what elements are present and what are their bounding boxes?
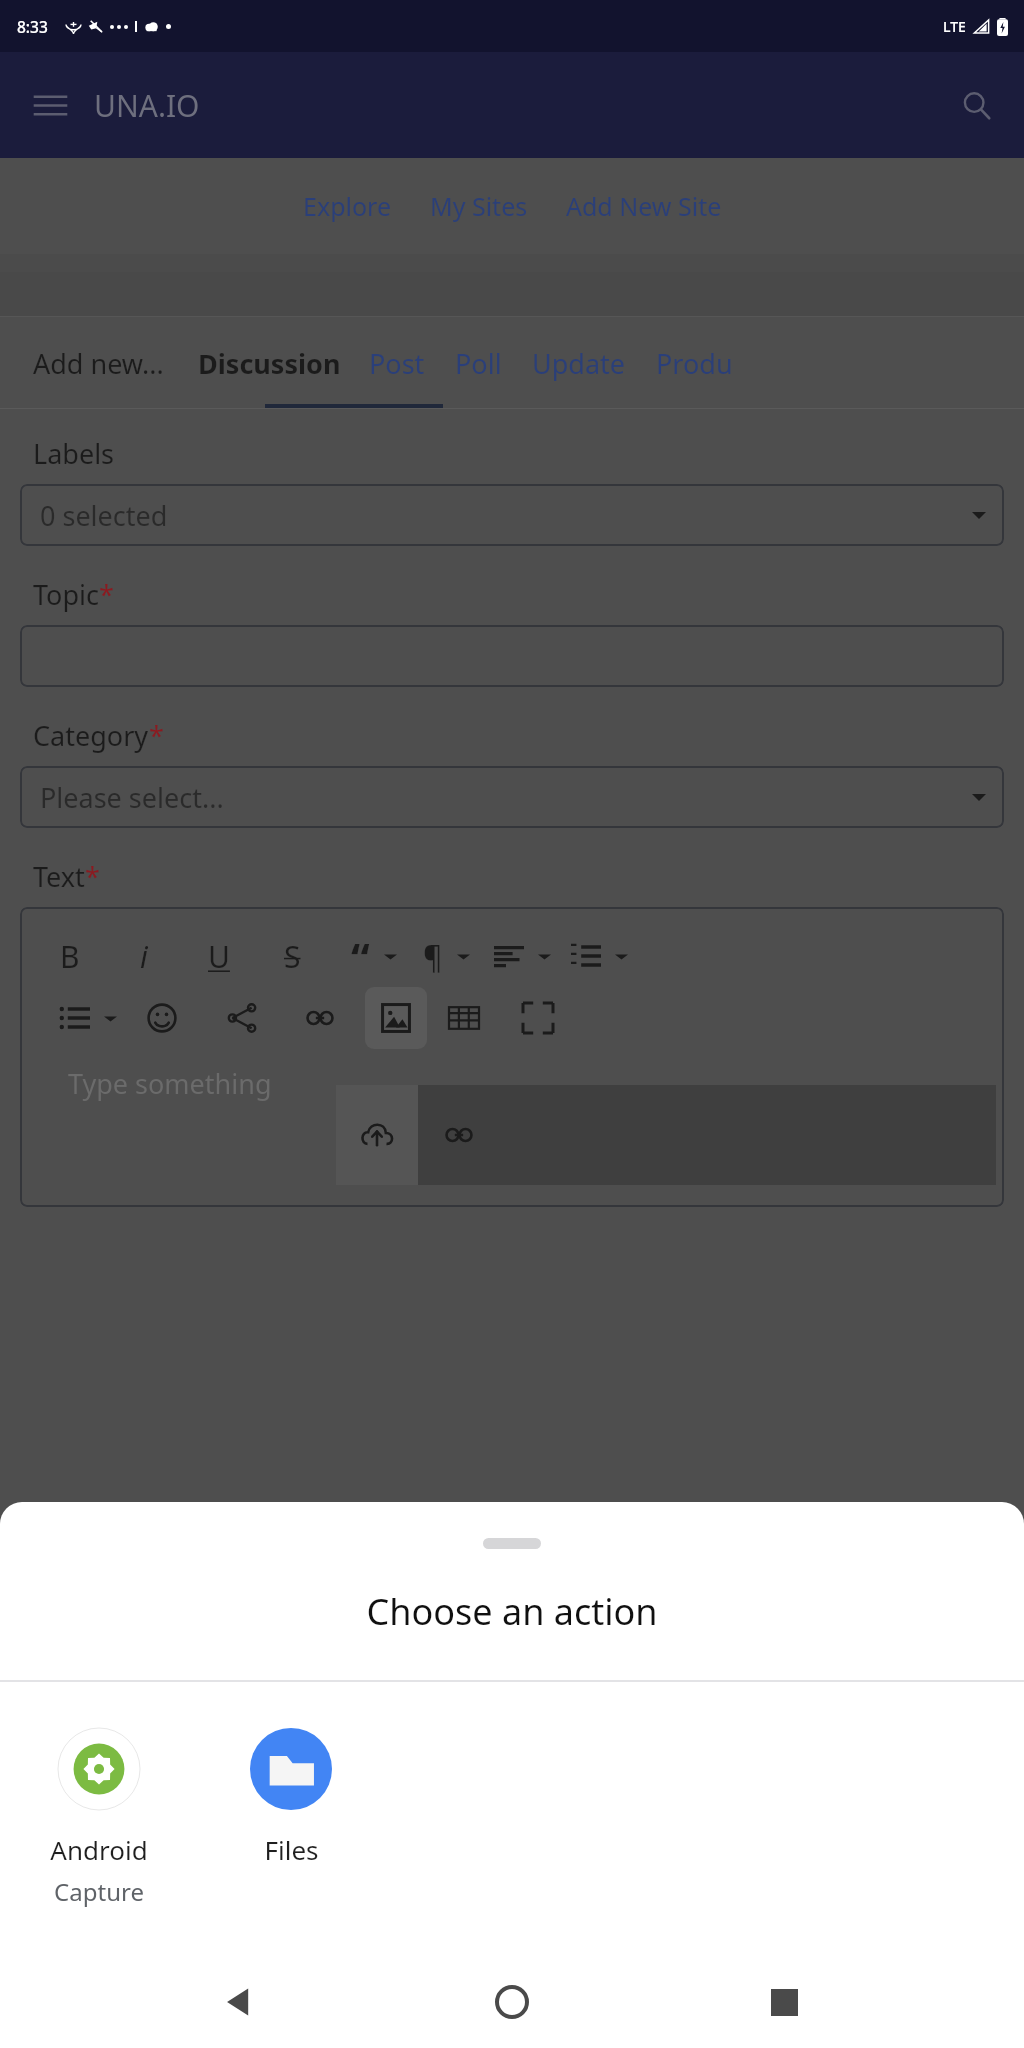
button[interactable]: Back bbox=[208, 1970, 272, 2034]
button[interactable]: Menu bbox=[26, 81, 74, 129]
staticText: Produ bbox=[656, 345, 733, 382]
staticText: Discussion bbox=[198, 345, 341, 382]
staticText: UNA.IO bbox=[94, 85, 200, 126]
button[interactable] bbox=[20, 625, 1004, 687]
staticText: * bbox=[149, 717, 164, 754]
staticText: Add New Site bbox=[566, 189, 722, 223]
button[interactable]: Files bbox=[216, 1724, 366, 1871]
staticText: Capture image bbox=[24, 1875, 174, 1908]
staticText: Poll bbox=[455, 345, 502, 382]
staticText: Android Sy… bbox=[24, 1832, 174, 1867]
staticText: Text bbox=[33, 858, 85, 895]
button[interactable] bbox=[567, 937, 605, 975]
staticText: “ bbox=[351, 929, 370, 983]
staticText: Topic bbox=[33, 576, 99, 613]
button[interactable]: U bbox=[204, 932, 234, 981]
button[interactable]: Explore bbox=[303, 183, 392, 229]
staticText: Update bbox=[532, 345, 626, 382]
button[interactable] bbox=[303, 1001, 337, 1035]
staticText: Type something bbox=[68, 1065, 272, 1102]
button[interactable]: Add new... bbox=[33, 345, 164, 382]
button[interactable]: Post bbox=[369, 345, 425, 382]
staticText: Labels bbox=[33, 435, 115, 472]
button[interactable] bbox=[223, 999, 261, 1037]
staticText: U bbox=[208, 936, 230, 977]
staticText: Category bbox=[33, 717, 149, 754]
button[interactable]: Home bbox=[480, 1970, 544, 2034]
button[interactable] bbox=[56, 999, 94, 1037]
staticText: Files bbox=[264, 1832, 319, 1867]
button[interactable]: “ bbox=[347, 925, 374, 987]
button[interactable]: Please select... bbox=[20, 766, 1004, 828]
staticText: * bbox=[85, 858, 100, 895]
button[interactable]: Discussion bbox=[198, 345, 341, 382]
staticText: Please select... bbox=[40, 779, 224, 816]
button[interactable]: My Sites bbox=[430, 183, 528, 229]
button[interactable]: Poll bbox=[455, 345, 502, 382]
button[interactable] bbox=[445, 999, 483, 1037]
staticText: * bbox=[99, 576, 114, 613]
button[interactable]: B bbox=[56, 932, 84, 981]
button[interactable] bbox=[490, 937, 528, 975]
button[interactable] bbox=[143, 999, 181, 1037]
staticText: Choose an action bbox=[0, 1587, 1024, 1636]
staticText: Explore bbox=[303, 189, 392, 223]
button[interactable]: ¶ bbox=[419, 932, 447, 981]
button[interactable]: S bbox=[280, 932, 305, 981]
staticText: S bbox=[284, 936, 301, 977]
button[interactable]: Image link bbox=[446, 1122, 472, 1148]
button[interactable]: Produ bbox=[656, 345, 733, 382]
button[interactable] bbox=[519, 999, 557, 1037]
button[interactable]: Android Sy… bbox=[24, 1724, 174, 1912]
staticText: 8:33 bbox=[17, 16, 48, 37]
button[interactable]: Insert image bbox=[365, 987, 427, 1049]
staticText: Add new... bbox=[33, 345, 164, 382]
button[interactable]: 0 selected bbox=[20, 484, 1004, 546]
button[interactable]: Add New Site bbox=[566, 183, 722, 229]
button[interactable]: i bbox=[136, 932, 152, 981]
staticText: Post bbox=[369, 345, 425, 382]
button[interactable]: Recents bbox=[752, 1970, 816, 2034]
staticText: i bbox=[140, 936, 148, 977]
button[interactable]: Search bbox=[952, 81, 1000, 129]
staticText: 0 selected bbox=[40, 497, 168, 534]
staticText: B bbox=[60, 936, 80, 977]
button[interactable]: Upload image bbox=[336, 1085, 418, 1185]
staticText: My Sites bbox=[430, 189, 528, 223]
staticText: LTE bbox=[943, 17, 966, 36]
staticText: ¶ bbox=[423, 936, 443, 977]
button[interactable]: Update bbox=[532, 345, 626, 382]
